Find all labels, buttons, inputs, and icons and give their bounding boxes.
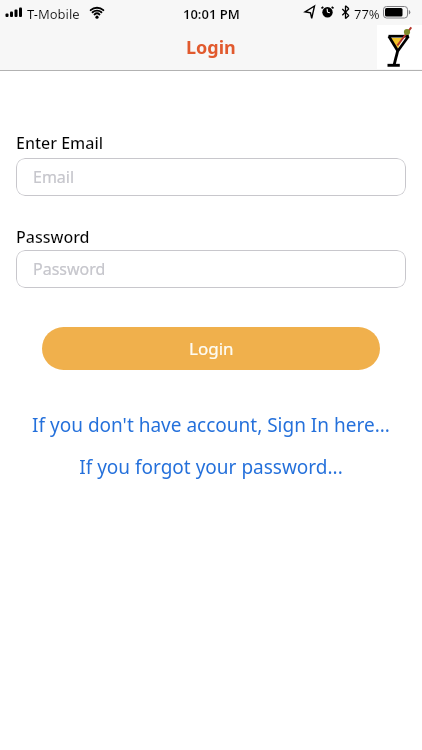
staticText: Email [33, 166, 75, 188]
button[interactable]: Email [16, 158, 406, 196]
staticText: Password [16, 226, 90, 248]
button[interactable]: If you forgot your password... [0, 454, 422, 480]
staticText: Enter Email [16, 132, 104, 154]
staticText: Login [189, 337, 234, 360]
staticText: Password [33, 258, 106, 280]
staticText: If you don't have account, Sign In here.… [32, 412, 390, 438]
staticText: 77% [354, 5, 380, 23]
staticText: Login [186, 35, 236, 60]
staticText: 10:01 PM [183, 5, 240, 23]
button[interactable]: If you don't have account, Sign In here.… [0, 412, 422, 438]
staticText: If you forgot your password... [79, 454, 343, 480]
button[interactable] [377, 25, 422, 69]
button[interactable]: Login [42, 327, 380, 370]
staticText: T-Mobile [27, 5, 80, 23]
button[interactable]: Password [16, 250, 406, 288]
